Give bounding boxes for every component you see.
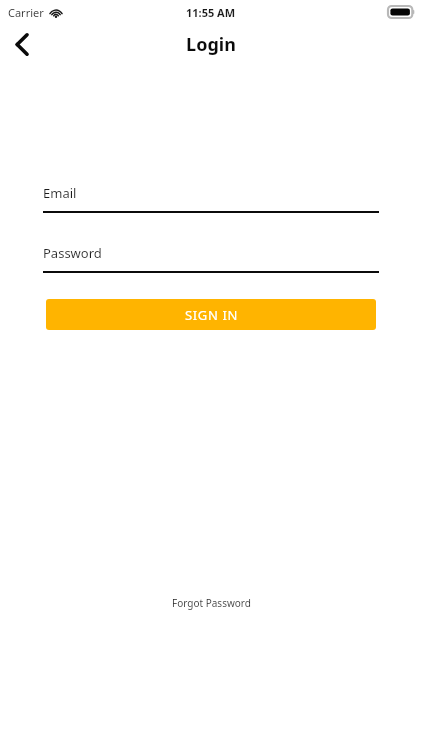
staticText: Carrier [8,5,44,20]
button[interactable]: Email [43,181,379,213]
other: Wi-Fi [49,7,63,18]
button[interactable]: Forgot Password [156,590,267,616]
staticText: Forgot Password [172,596,251,610]
staticText: Login [186,32,236,57]
staticText: SIGN IN [185,306,238,324]
button[interactable]: Password [43,241,379,273]
staticText: 11:55 AM [186,5,236,20]
button[interactable]: SIGN IN [46,299,376,330]
staticText: Email [43,184,77,202]
button[interactable]: Back [0,24,44,64]
other: Battery full [388,6,415,18]
staticText: Password [43,244,102,262]
